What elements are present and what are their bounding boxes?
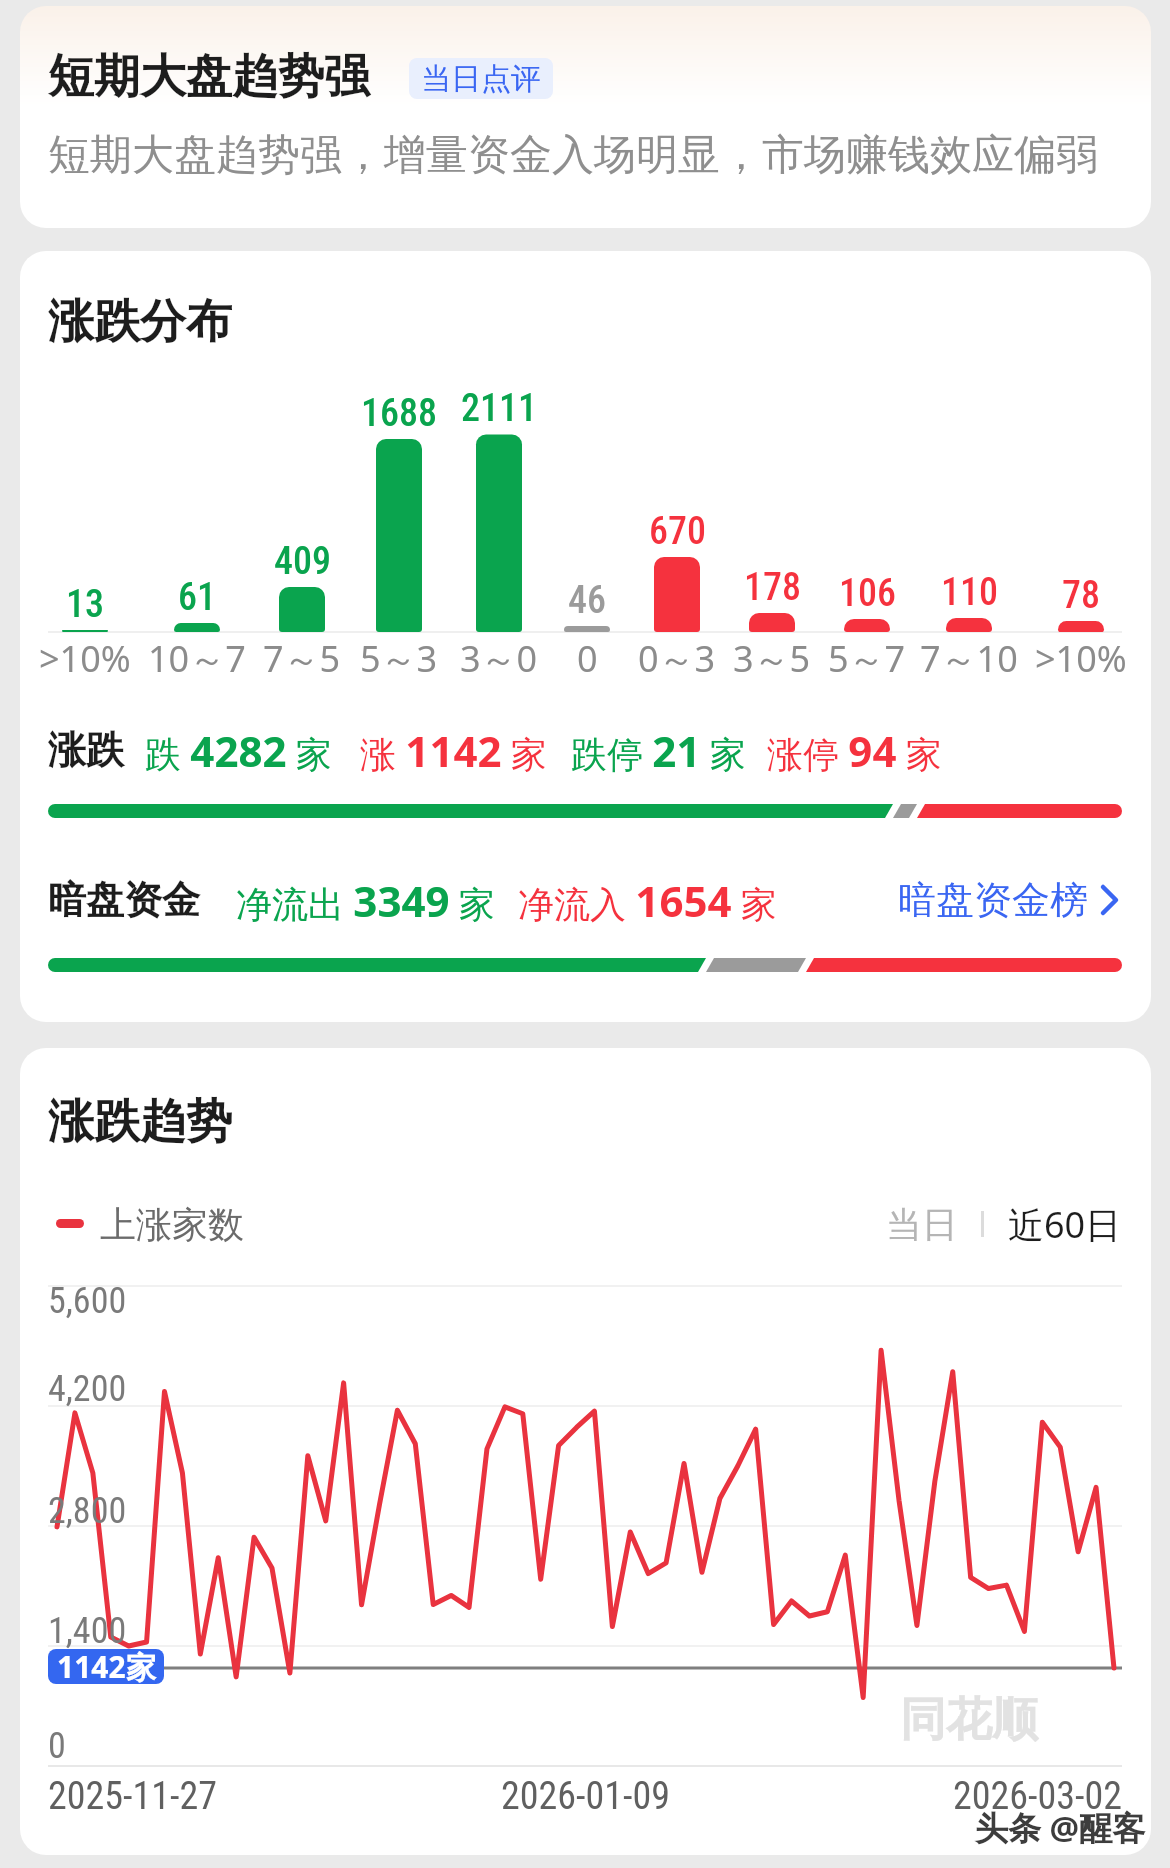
staticText: 净流出 3349 家 [236,872,495,929]
staticText: 5,600 [48,1280,127,1322]
staticText: 上涨家数 [100,1202,244,1247]
staticText: 178 [744,565,801,610]
staticText: 110 [941,570,998,615]
staticText: 暗盘资金 [48,876,200,924]
staticText: 7～5 [263,634,341,683]
button[interactable]: 暗盘资金榜 [898,870,1138,930]
staticText: 0～3 [638,634,716,683]
staticText: 跌停 21 家 [571,722,746,779]
staticText: 5～7 [828,634,906,683]
staticText: 2025-11-27 [48,1774,217,1819]
staticText: 61 [178,575,216,620]
staticText: 短期大盘趋势强 [48,48,370,106]
staticText: 3～5 [733,634,811,683]
staticText: 78 [1062,573,1100,618]
staticText: 409 [274,539,331,584]
staticText: 近60日 [1008,1200,1122,1249]
staticText: 7～10 [920,634,1018,683]
staticText: 2,800 [48,1490,127,1532]
staticText: 2111 [461,386,537,431]
staticText: 10～7 [148,634,246,683]
staticText: 5～3 [360,634,438,683]
staticText: 106 [839,571,896,616]
staticText: 2026-03-02 [953,1774,1122,1819]
staticText: 0 [577,634,598,683]
staticText: 暗盘资金榜 [898,876,1088,924]
staticText: 短期大盘趋势强，增量资金入场明显，市场赚钱效应偏弱 [48,129,1098,182]
staticText: >10% [39,634,131,683]
staticText: 2026-01-09 [501,1774,670,1819]
button[interactable]: 当日 [700,1184,1122,1264]
staticText: 1,400 [48,1610,127,1652]
staticText: 13 [66,582,104,627]
staticText: 跌 4282 家 [145,722,332,779]
staticText: 涨停 94 家 [767,722,942,779]
staticText: >10% [1035,634,1127,683]
staticText: 同花顺 [900,1691,1038,1749]
staticText: 头条 @醒客 [975,1805,1146,1850]
button[interactable]: 当日点评 [409,58,553,99]
staticText: 涨跌趋势 [48,1093,232,1151]
staticText: 3～0 [460,634,538,683]
staticText: 涨跌分布 [48,293,232,351]
staticText: 涨 1142 家 [360,722,547,779]
staticText: 670 [649,509,706,554]
staticText: 4,200 [48,1368,127,1410]
staticText: 当日点评 [421,60,541,98]
staticText: 0 [48,1725,66,1767]
staticText: 1688 [361,391,437,436]
staticText: 1142家 [57,1646,156,1687]
staticText: 46 [568,578,606,623]
staticText: 净流入 1654 家 [518,872,777,929]
staticText: 当日 [886,1202,958,1247]
staticText: 涨跌 [48,726,124,774]
